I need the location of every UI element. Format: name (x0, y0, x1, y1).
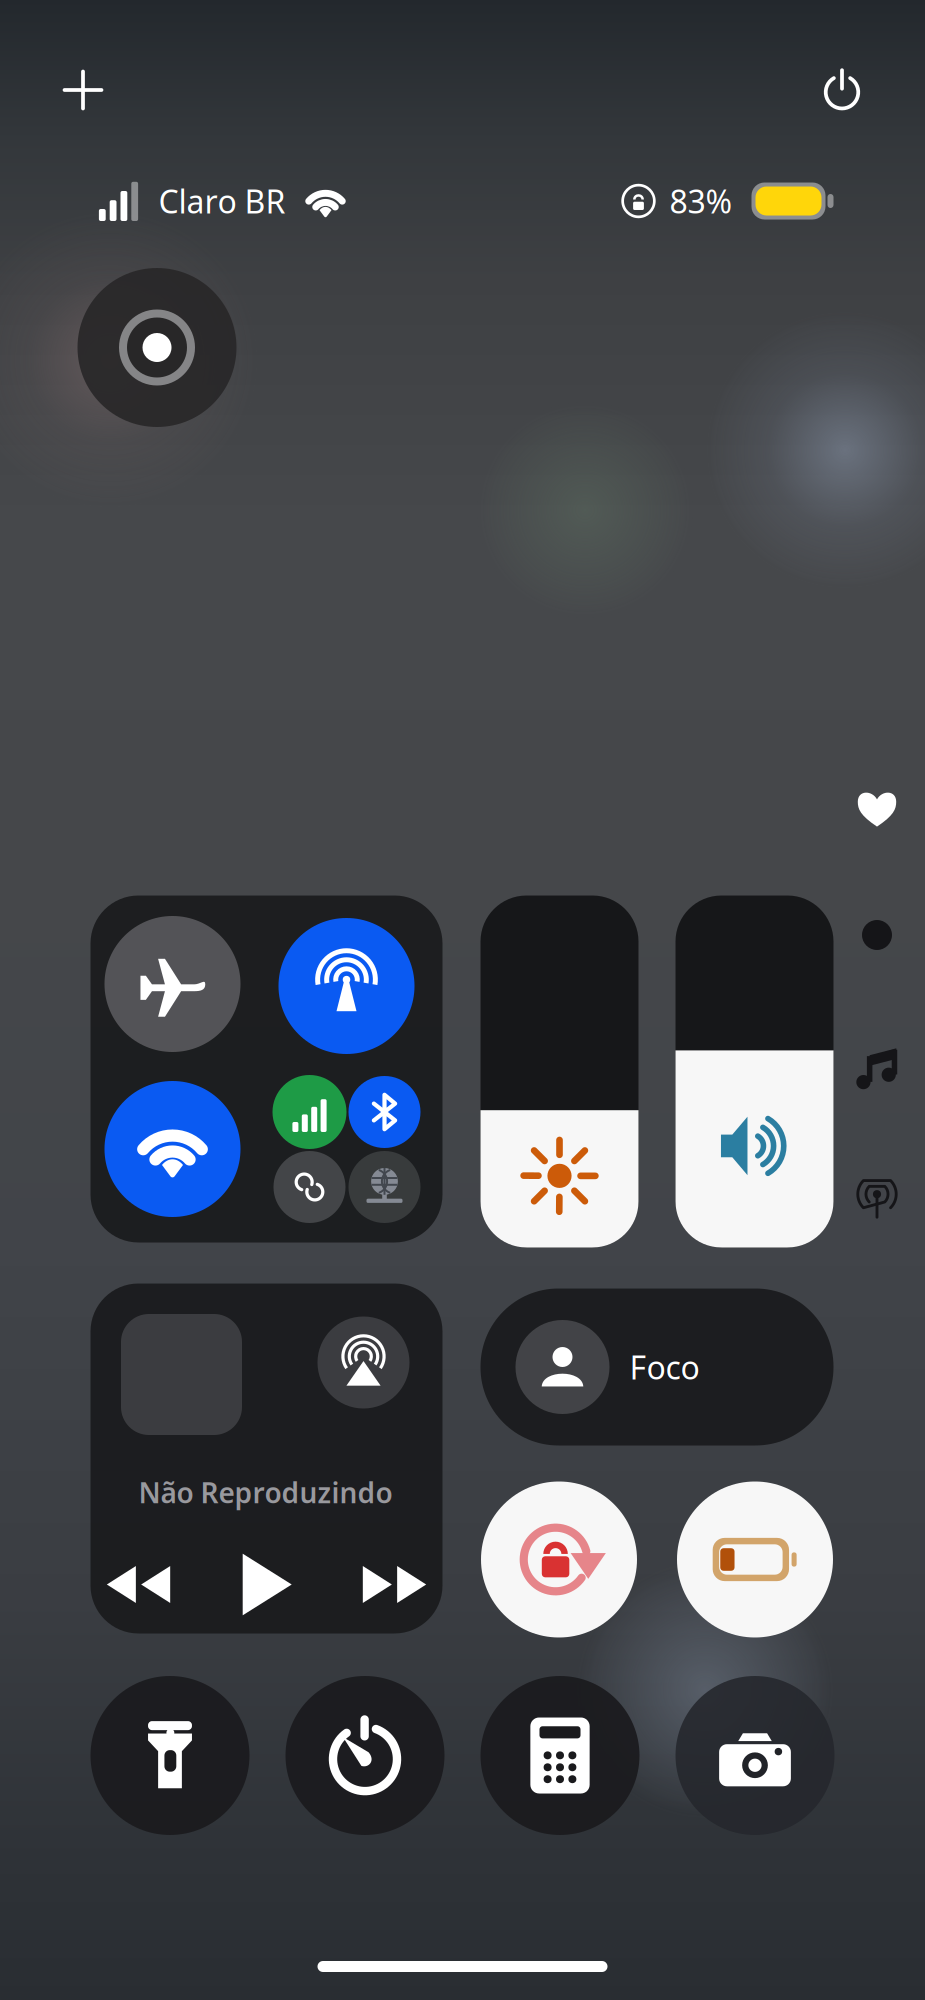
button[interactable]: Airplane Mode (104, 916, 240, 1052)
button[interactable]: Low Power Mode (677, 1481, 833, 1637)
staticText: Não Reproduzindo (138, 1474, 392, 1511)
button[interactable]: Flashlight (90, 1676, 249, 1835)
button[interactable]: Bluetooth (348, 1076, 420, 1148)
button[interactable]: Personal Hotspot (273, 1151, 345, 1223)
button[interactable]: Focus (480, 1288, 833, 1445)
button[interactable]: AssistiveTouch (77, 268, 236, 427)
button[interactable]: Wi-Fi (104, 1081, 240, 1217)
button[interactable]: Fast Forward (354, 1549, 434, 1619)
button[interactable]: Calculator (480, 1676, 639, 1835)
button[interactable]: Camera (675, 1676, 834, 1835)
button[interactable]: Power off (797, 45, 887, 135)
button[interactable]: Play (226, 1549, 306, 1619)
button[interactable]: VPN (348, 1151, 420, 1223)
button[interactable]: Volume (675, 895, 833, 1247)
button[interactable]: Timer (285, 1676, 444, 1835)
staticText: 83% (669, 180, 732, 222)
button[interactable]: AirDrop (278, 918, 414, 1054)
staticText: Foco (629, 1346, 699, 1388)
button[interactable]: Cellular Data (272, 1075, 346, 1149)
button[interactable]: Add control (38, 45, 128, 135)
button[interactable]: Brightness (480, 895, 638, 1247)
button[interactable]: Rotation Lock (481, 1481, 637, 1637)
button[interactable]: Rewind (98, 1549, 178, 1619)
button[interactable]: AirPlay (317, 1316, 409, 1408)
staticText: Claro BR (158, 180, 285, 222)
